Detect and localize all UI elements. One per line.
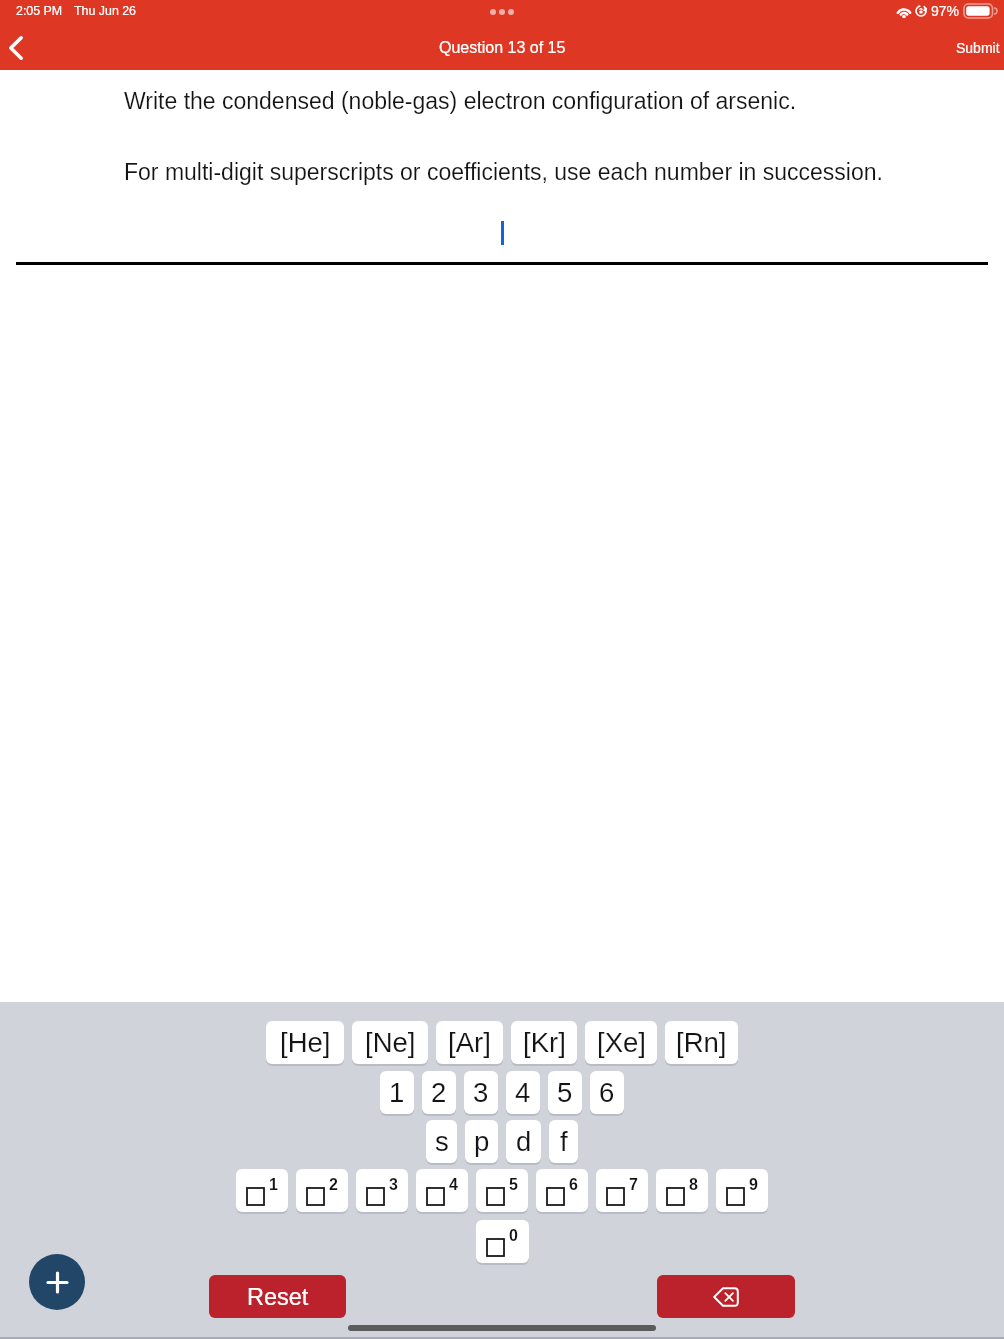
button[interactable]: [Ne] — [352, 1021, 428, 1064]
staticText: 8 — [689, 1176, 698, 1194]
staticText: 5 — [557, 1077, 573, 1108]
button[interactable]: d — [506, 1120, 541, 1163]
button[interactable]: 5 — [476, 1169, 528, 1212]
staticText: [He] — [280, 1027, 331, 1058]
button[interactable]: [Xe] — [585, 1021, 657, 1064]
button[interactable]: 4 — [416, 1169, 468, 1212]
button[interactable]: Delete — [657, 1275, 795, 1318]
button[interactable]: Reset — [209, 1275, 346, 1318]
button[interactable]: p — [465, 1120, 498, 1163]
staticText: d — [516, 1126, 532, 1157]
staticText: Thu Jun 26 — [74, 4, 136, 18]
button[interactable]: f — [549, 1120, 578, 1163]
staticText: Submit — [956, 40, 1000, 56]
staticText: 3 — [473, 1077, 489, 1108]
staticText: [Rn] — [676, 1027, 727, 1058]
button[interactable]: Back — [0, 26, 38, 70]
staticText: [Ne] — [365, 1027, 416, 1058]
staticText: [Xe] — [597, 1027, 646, 1058]
button[interactable]: Submit — [942, 26, 1004, 70]
staticText: 9 — [749, 1176, 758, 1194]
button[interactable]: [Kr] — [511, 1021, 577, 1064]
staticText: 5 — [509, 1176, 518, 1194]
button[interactable]: [Rn] — [665, 1021, 738, 1064]
button[interactable]: 6 — [536, 1169, 588, 1212]
button[interactable]: 3 — [356, 1169, 408, 1212]
staticText: Reset — [247, 1284, 309, 1310]
staticText: 1 — [269, 1176, 278, 1194]
staticText: [Kr] — [523, 1027, 566, 1058]
staticText: 6 — [569, 1176, 578, 1194]
button[interactable]: Add — [29, 1254, 85, 1310]
button[interactable]: 1 — [236, 1169, 288, 1212]
button[interactable]: 9 — [716, 1169, 768, 1212]
staticText: f — [560, 1126, 568, 1157]
staticText: 4 — [515, 1077, 531, 1108]
button[interactable]: 8 — [656, 1169, 708, 1212]
staticText: s — [435, 1126, 449, 1157]
button[interactable]: 2 — [296, 1169, 348, 1212]
staticText: 3 — [389, 1176, 398, 1194]
staticText: 1 — [389, 1077, 405, 1108]
button[interactable]: 7 — [596, 1169, 648, 1212]
staticText: [Ar] — [448, 1027, 491, 1058]
button[interactable]: [Ar] — [436, 1021, 503, 1064]
staticText: 2 — [329, 1176, 338, 1194]
staticText: For multi-digit superscripts or coeffici… — [124, 159, 883, 185]
button[interactable]: 0 — [476, 1220, 529, 1263]
button[interactable]: 3 — [464, 1071, 498, 1114]
staticText: p — [474, 1126, 490, 1157]
staticText: 0 — [509, 1227, 518, 1245]
button[interactable]: 1 — [380, 1071, 414, 1114]
button[interactable]: 2 — [422, 1071, 456, 1114]
button[interactable]: 5 — [548, 1071, 582, 1114]
staticText: Question 13 of 15 — [439, 39, 566, 57]
staticText: 6 — [599, 1077, 615, 1108]
staticText: 97% — [931, 3, 960, 19]
button[interactable]: 4 — [506, 1071, 540, 1114]
button[interactable]: 6 — [590, 1071, 624, 1114]
button[interactable]: [He] — [266, 1021, 344, 1064]
staticText: 2 — [431, 1077, 447, 1108]
staticText: Write the condensed (noble-gas) electron… — [124, 88, 797, 114]
staticText: 7 — [629, 1176, 638, 1194]
staticText: 4 — [449, 1176, 458, 1194]
staticText: 2:05 PM — [16, 4, 63, 18]
button[interactable]: s — [426, 1120, 457, 1163]
